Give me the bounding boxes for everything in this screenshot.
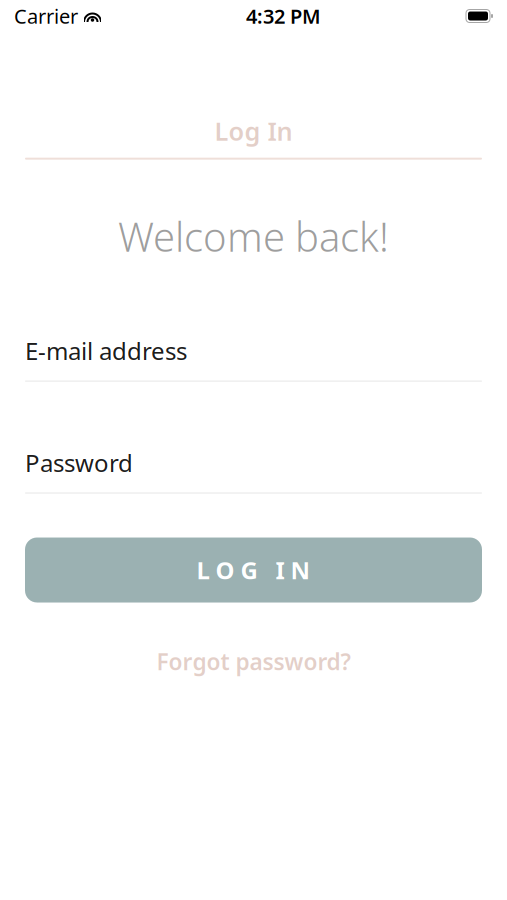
staticText: Forgot password?	[156, 646, 350, 677]
staticText: Password	[25, 447, 133, 478]
staticText: Welcome back!	[118, 210, 389, 263]
staticText: 4:32 PM	[246, 3, 321, 29]
staticText: Carrier	[14, 3, 78, 29]
button[interactable]: L O G I N	[25, 537, 482, 602]
staticText: E-mail address	[25, 335, 187, 367]
staticText: Log In	[214, 114, 292, 148]
staticText: L O G I N	[196, 554, 310, 586]
button[interactable]: E-mail address	[25, 335, 482, 382]
button[interactable]: Password	[25, 447, 482, 493]
button[interactable]: Forgot password?	[25, 640, 482, 683]
